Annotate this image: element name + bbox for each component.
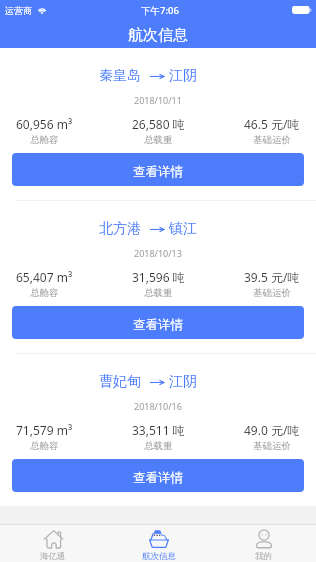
staticText: 秦皇岛	[99, 67, 141, 85]
staticText: 运营商	[5, 5, 32, 16]
staticText: 镇江	[169, 220, 197, 238]
staticText: 海亿通	[40, 551, 66, 562]
button[interactable]: Profile	[211, 525, 316, 562]
button[interactable]: 查看详情	[12, 459, 304, 492]
staticText: 曹妃甸	[99, 373, 141, 391]
staticText: 基础运价	[253, 440, 291, 452]
staticText: 60,956 m³	[16, 116, 73, 132]
staticText: 总载重	[144, 440, 173, 452]
staticText: 总舱容	[30, 440, 59, 452]
staticText: 基础运价	[253, 287, 291, 299]
staticText: 33,511 吨	[132, 422, 185, 438]
staticText: 49.0 元/吨	[244, 422, 300, 438]
staticText: 查看详情	[133, 164, 183, 180]
staticText: 总舱容	[30, 287, 59, 299]
staticText: 航次信息	[142, 551, 176, 562]
staticText: 46.5 元/吨	[244, 116, 300, 132]
button[interactable]: 北方港	[0, 201, 316, 353]
staticText: 2018/10/11	[134, 94, 182, 106]
staticText: 2018/10/16	[134, 400, 182, 412]
staticText: 下午7:06	[141, 4, 179, 17]
staticText: 总舱容	[30, 134, 59, 146]
staticText: 总载重	[144, 287, 173, 299]
staticText: 2018/10/13	[134, 247, 182, 259]
staticText: 航次信息	[128, 26, 188, 45]
button[interactable]: Voyages	[106, 525, 211, 562]
button[interactable]: 曹妃甸	[0, 354, 316, 506]
button[interactable]: 查看详情	[12, 153, 304, 186]
button[interactable]: Home	[0, 525, 106, 562]
staticText: 65,407 m³	[16, 269, 73, 285]
staticText: 71,579 m³	[16, 422, 73, 438]
staticText: 我的	[255, 551, 272, 562]
staticText: 查看详情	[133, 317, 183, 333]
staticText: 江阴	[169, 67, 197, 85]
staticText: 总载重	[144, 134, 173, 146]
staticText: 基础运价	[253, 134, 291, 146]
staticText: 北方港	[99, 220, 141, 238]
button[interactable]: 查看详情	[12, 306, 304, 339]
staticText: 26,580 吨	[132, 116, 185, 132]
staticText: 31,596 吨	[132, 269, 185, 285]
staticText: 查看详情	[133, 470, 183, 486]
staticText: 39.5 元/吨	[244, 269, 300, 285]
staticText: 江阴	[169, 373, 197, 391]
button[interactable]: 秦皇岛	[0, 48, 316, 200]
